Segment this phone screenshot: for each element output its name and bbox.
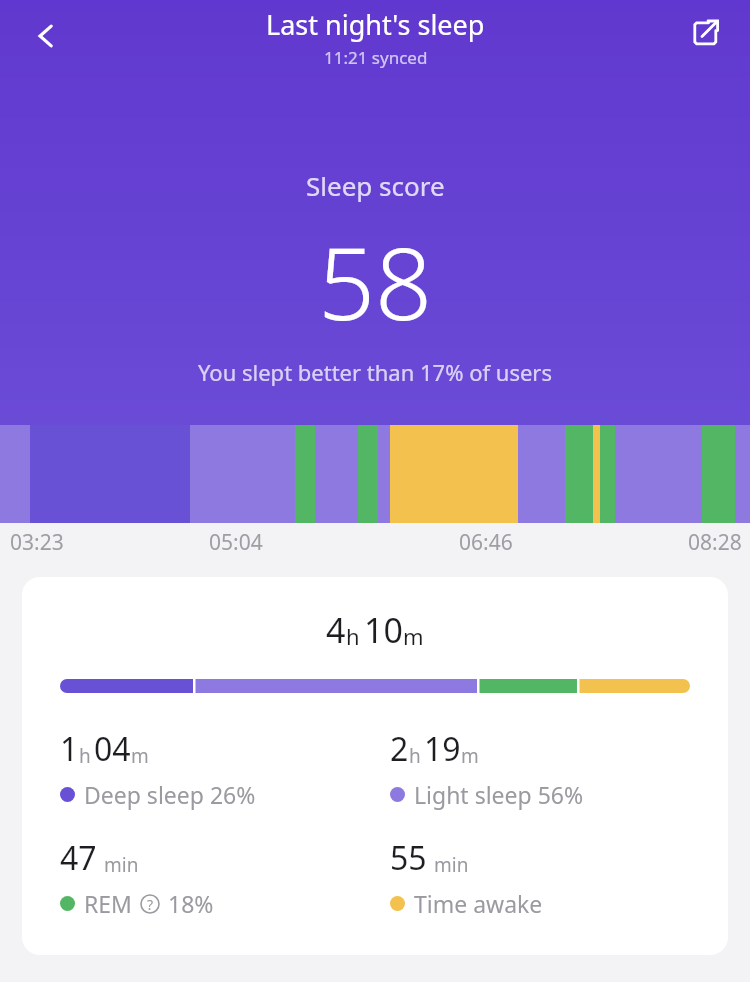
button[interactable]: What is REM? [139, 893, 161, 915]
staticText: ? [147, 895, 154, 914]
staticText: Light sleep 56% [414, 779, 584, 810]
button[interactable]: 47 [60, 836, 390, 919]
staticText: 58 [318, 213, 433, 349]
staticText: m [403, 621, 424, 651]
staticText: REM [84, 888, 132, 919]
staticText: 55 [390, 836, 427, 880]
staticText: 10 [364, 607, 403, 653]
button[interactable]: 55 [390, 836, 708, 919]
staticText: 2 [390, 727, 409, 771]
staticText: Sleep score [306, 168, 445, 203]
staticText: 05:04 [209, 528, 263, 557]
staticText: You slept better than 17% of users [198, 357, 552, 387]
staticText: 04 [94, 727, 131, 771]
staticText: min [104, 852, 139, 878]
staticText: Last night's sleep [266, 6, 485, 43]
staticText: h [409, 743, 421, 769]
staticText: 4 [326, 607, 346, 653]
button[interactable]: 1 [60, 727, 390, 810]
staticText: h [79, 743, 91, 769]
staticText: 08:28 [688, 528, 742, 557]
button[interactable]: Share [674, 2, 736, 64]
staticText: 18% [168, 888, 214, 919]
staticText: Time awake [414, 888, 543, 919]
staticText: 03:23 [10, 528, 64, 557]
staticText: 19 [424, 727, 461, 771]
staticText: min [434, 852, 469, 878]
staticText: 06:46 [459, 528, 513, 557]
staticText: m [461, 743, 479, 769]
staticText: 47 [60, 836, 97, 880]
staticText: 11:21 synced [324, 46, 428, 69]
staticText: h [346, 621, 360, 651]
staticText: 1 [60, 727, 79, 771]
staticText: Deep sleep 26% [84, 779, 256, 810]
button[interactable]: 2 [390, 727, 708, 810]
staticText: m [131, 743, 149, 769]
button[interactable]: Back [14, 4, 78, 68]
